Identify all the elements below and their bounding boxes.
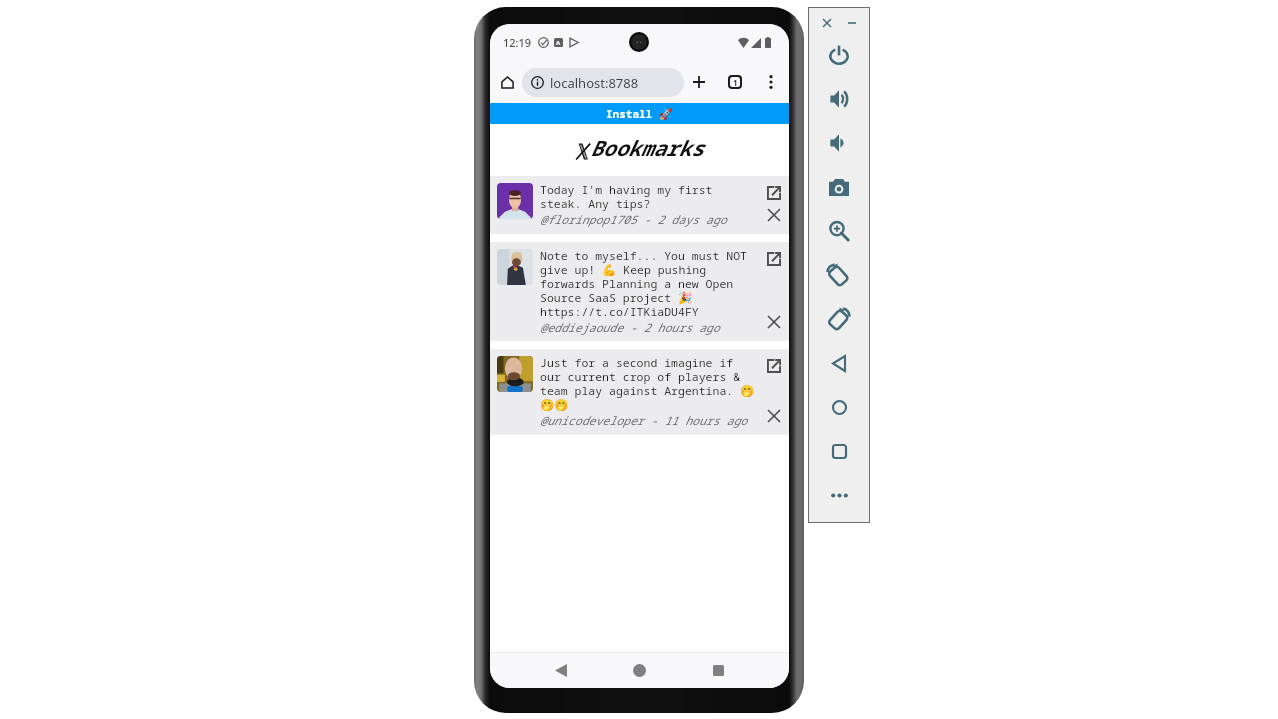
staticText: 12:19 bbox=[503, 35, 532, 50]
button[interactable]: Zoom bbox=[809, 209, 869, 253]
staticText: Install 🚀 bbox=[606, 106, 673, 121]
button[interactable]: Overview bbox=[809, 429, 869, 473]
staticText: Today I'm having my first steak. Any tip… bbox=[540, 183, 713, 211]
button[interactable]: Today I'm having my first steak. Any tip… bbox=[490, 176, 789, 234]
button[interactable]: New tab bbox=[684, 66, 714, 98]
button[interactable]: Home bbox=[600, 653, 679, 688]
staticText: @florinpop1705 - 2 days ago bbox=[540, 212, 727, 228]
button[interactable]: Power bbox=[809, 33, 869, 77]
button[interactable]: Just for a second imagine if our current… bbox=[490, 349, 789, 435]
button[interactable]: More bbox=[809, 473, 869, 517]
button[interactable]: Take screenshot bbox=[809, 165, 869, 209]
button[interactable]: Rotate right bbox=[809, 297, 869, 341]
staticText: @eddiejaoude - 2 hours ago bbox=[540, 320, 720, 336]
button[interactable]: Minimize bbox=[842, 13, 862, 33]
button[interactable]: Rotate left bbox=[809, 253, 869, 297]
button[interactable]: Tabs bbox=[714, 66, 756, 98]
staticText: A bbox=[556, 39, 561, 47]
button[interactable]: Volume down bbox=[809, 121, 869, 165]
button[interactable]: Note to myself... You must NOT give up! … bbox=[490, 242, 789, 341]
button[interactable]: Remove bookmark bbox=[761, 406, 787, 426]
button[interactable]: Home bbox=[809, 385, 869, 429]
button[interactable]: Remove bookmark bbox=[761, 205, 787, 225]
button[interactable]: localhost:8788 bbox=[522, 68, 684, 97]
staticText: localhost:8788 bbox=[550, 74, 639, 92]
button[interactable]: Recent apps bbox=[679, 653, 758, 688]
button[interactable]: Remove bookmark bbox=[761, 312, 787, 332]
button[interactable]: Open link bbox=[761, 249, 787, 269]
button[interactable]: Back bbox=[809, 341, 869, 385]
staticText: @unicodeveloper - 11 hours ago bbox=[540, 413, 747, 429]
staticText: Bookmarks bbox=[590, 134, 704, 163]
staticText: Note to myself... You must NOT give up! … bbox=[540, 249, 747, 319]
button[interactable]: Open link bbox=[761, 356, 787, 376]
button[interactable]: Volume up bbox=[809, 77, 869, 121]
staticText: Just for a second imagine if our current… bbox=[540, 356, 755, 412]
button[interactable]: Install 🚀 bbox=[490, 103, 789, 124]
staticText: 1 bbox=[733, 77, 738, 87]
button[interactable]: Home bbox=[497, 68, 518, 96]
button[interactable]: Close bbox=[817, 13, 837, 33]
button[interactable]: Open link bbox=[761, 183, 787, 203]
button[interactable]: More options bbox=[756, 66, 785, 98]
button[interactable]: Back bbox=[521, 653, 600, 688]
